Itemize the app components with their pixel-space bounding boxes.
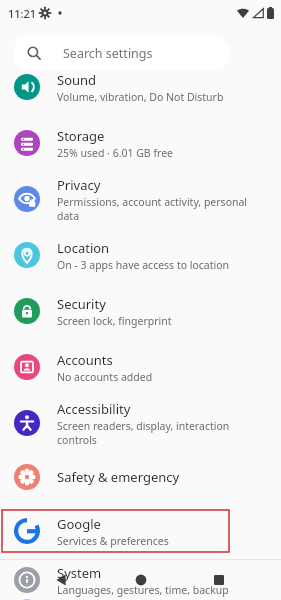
staticText: Privacy <box>57 176 101 194</box>
button[interactable]: Security <box>0 284 281 338</box>
staticText: 25% used · 6.01 GB free <box>57 146 173 160</box>
staticText: Screen readers, display, interaction con… <box>57 419 267 447</box>
staticText: Location <box>57 239 110 257</box>
button[interactable]: Search <box>13 36 230 70</box>
button[interactable]: Privacy <box>0 172 281 226</box>
staticText: System <box>57 564 102 582</box>
staticText: No accounts added <box>57 370 153 384</box>
button[interactable]: Recent apps <box>209 570 229 590</box>
staticText: Permissions, account activity, personal … <box>57 195 267 223</box>
staticText: Accessibility <box>57 400 131 418</box>
staticText: Security <box>57 295 106 313</box>
staticText: 11:21 <box>8 6 37 21</box>
button[interactable]: Sound <box>0 60 281 114</box>
button[interactable]: Location <box>0 228 281 282</box>
button[interactable]: Accounts <box>0 340 281 394</box>
button[interactable]: Google <box>0 504 281 558</box>
staticText: Google <box>57 515 101 533</box>
staticText: Search settings <box>63 45 153 62</box>
button[interactable]: Storage <box>0 116 281 170</box>
staticText: Safety & emergency <box>57 468 180 486</box>
button[interactable]: Safety & emergency <box>0 452 281 502</box>
staticText: Sound <box>57 71 97 89</box>
other: Search <box>27 46 41 60</box>
button[interactable]: System <box>0 560 281 600</box>
staticText: Services & preferences <box>57 534 169 548</box>
button[interactable]: Back <box>52 570 72 590</box>
staticText: Accounts <box>57 351 113 369</box>
button[interactable]: Accessibility <box>0 396 281 450</box>
button[interactable]: Home <box>131 570 151 590</box>
staticText: Languages, gestures, time, backup <box>57 583 229 597</box>
staticText: Volume, vibration, Do Not Disturb <box>57 90 224 104</box>
staticText: On - 3 apps have access to location <box>57 258 230 272</box>
staticText: Screen lock, fingerprint <box>57 314 172 328</box>
staticText: Storage <box>57 127 105 145</box>
